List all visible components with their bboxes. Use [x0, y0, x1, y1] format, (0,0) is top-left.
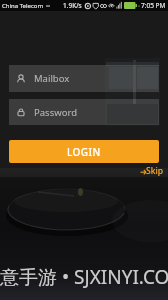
staticText: 1.9K/s	[63, 1, 82, 10]
button[interactable]: LOGIN	[9, 140, 159, 163]
staticText: 创意手游 • SJXINYI.COM	[0, 264, 149, 290]
button[interactable]: Password	[9, 99, 159, 125]
staticText: Skip	[146, 165, 163, 177]
staticText: Password	[34, 106, 77, 119]
button[interactable]: Skip	[135, 163, 168, 179]
button[interactable]: Mailbox	[9, 65, 159, 92]
staticText: 7:05 PM	[141, 1, 166, 10]
staticText: LOGIN	[67, 145, 101, 159]
staticText: China Telecom	[2, 2, 44, 10]
staticText: Mailbox	[34, 72, 70, 85]
